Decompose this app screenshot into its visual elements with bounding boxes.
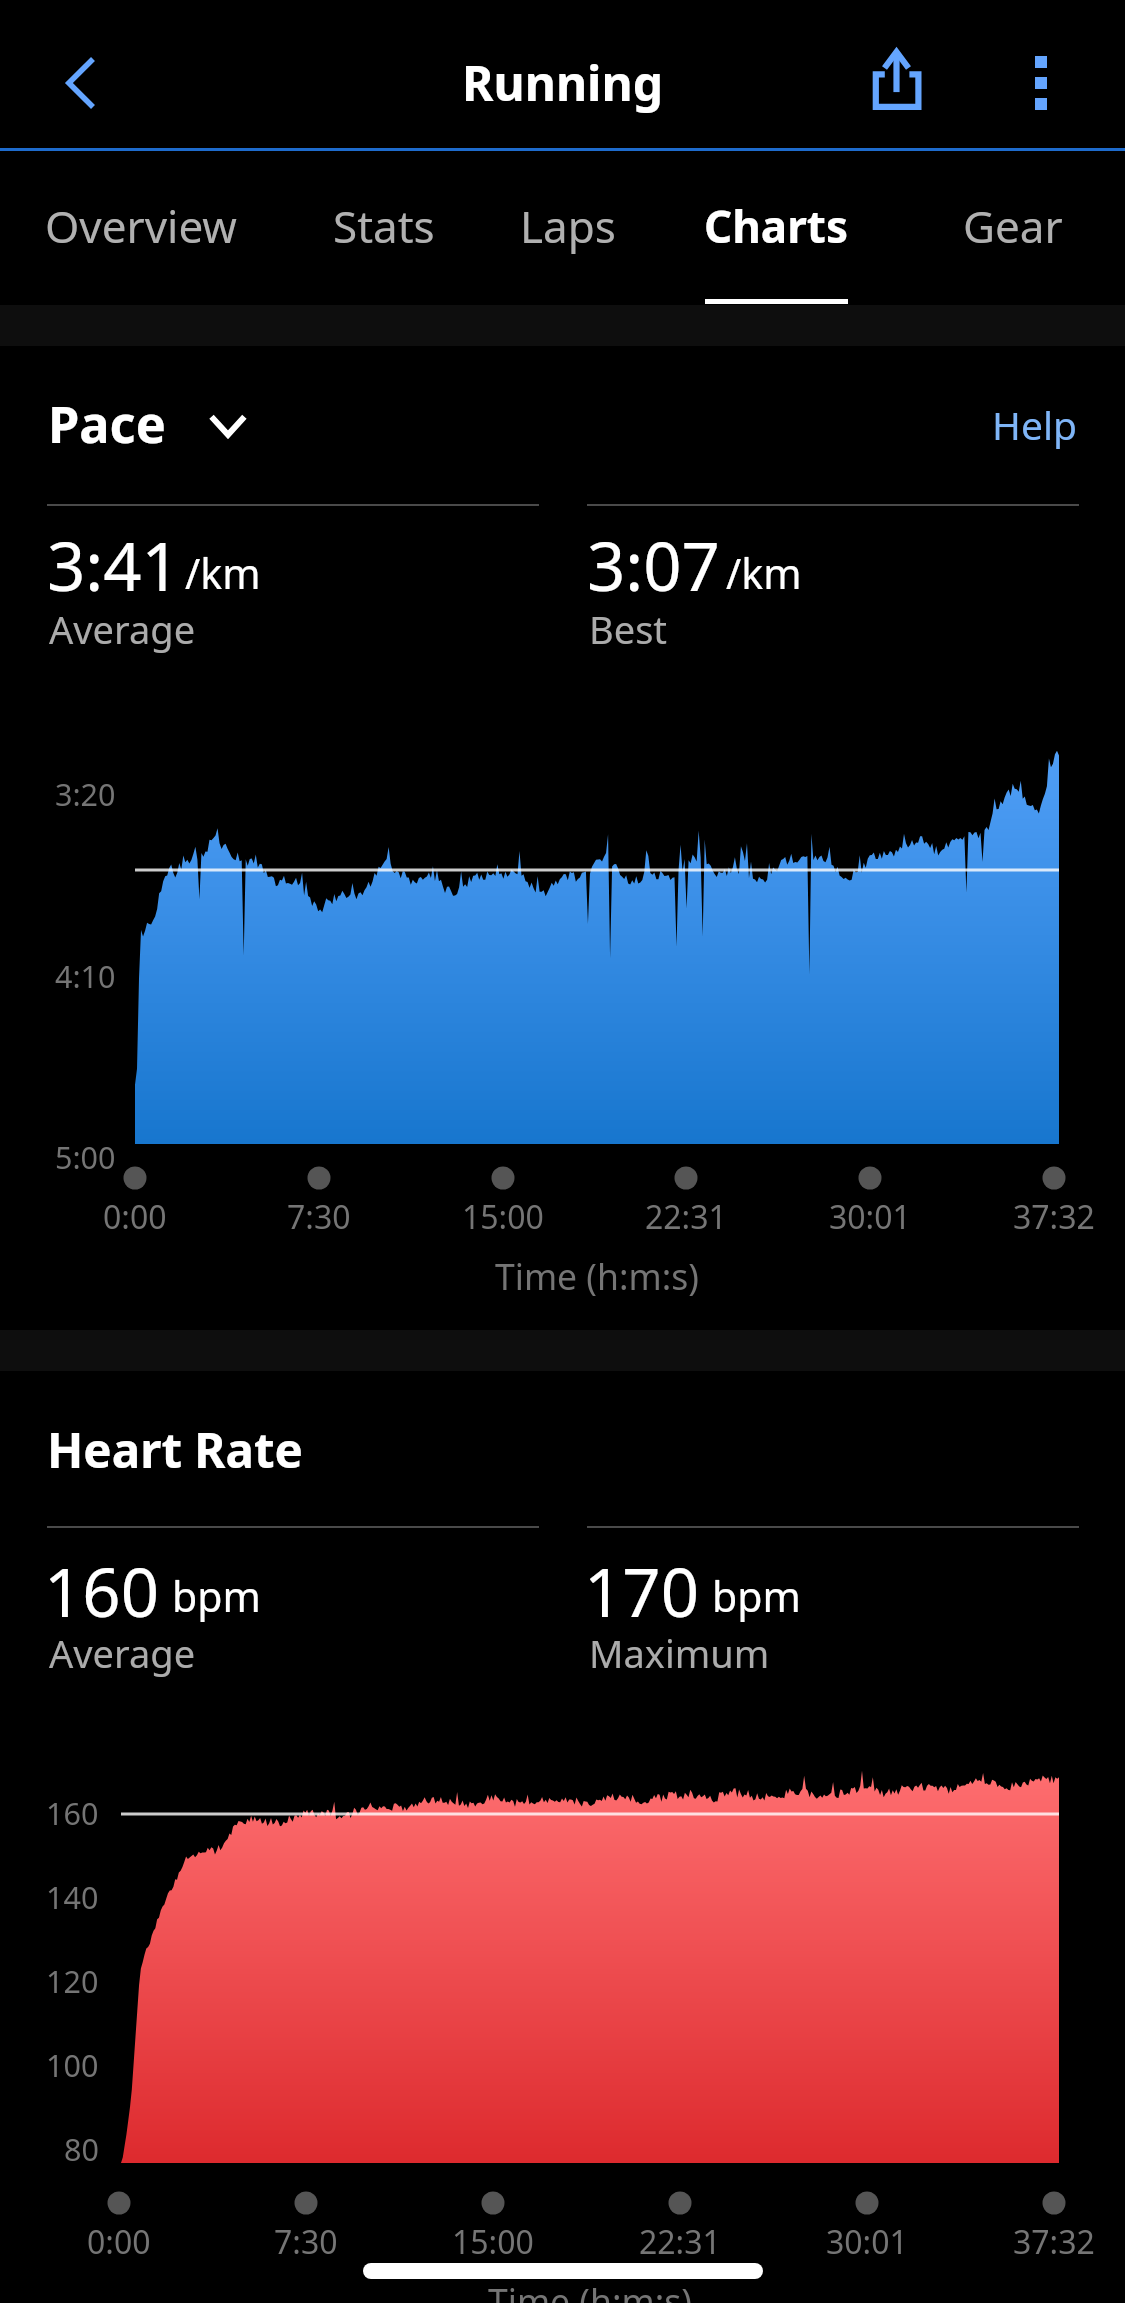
button[interactable]: Overview <box>18 160 264 305</box>
staticText: 30:01 <box>829 1195 911 1239</box>
staticText: Time (h:m:s) <box>488 2277 692 2303</box>
button[interactable]: Charts <box>677 160 875 305</box>
staticText: Time (h:m:s) <box>495 1252 699 1300</box>
staticText: Charts <box>704 196 849 256</box>
staticText: 3:20 <box>55 773 116 815</box>
staticText: bpm <box>172 1568 261 1624</box>
staticText: 0:00 <box>103 1195 167 1239</box>
button[interactable]: Gear <box>935 160 1091 305</box>
staticText: 0:00 <box>87 2220 151 2264</box>
staticText: Pace <box>48 389 166 458</box>
staticText: 15:00 <box>462 1195 544 1239</box>
button[interactable]: More options <box>1001 38 1081 118</box>
button[interactable]: Stats <box>304 160 464 305</box>
staticText: /km <box>185 545 261 601</box>
staticText: 22:31 <box>639 2220 721 2264</box>
staticText: 170 <box>584 1545 699 1636</box>
staticText: Average <box>49 1627 196 1679</box>
staticText: Running <box>462 50 663 115</box>
staticText: 22:31 <box>645 1195 727 1239</box>
staticText: 15:00 <box>452 2220 534 2264</box>
staticText: 37:32 <box>1013 2220 1095 2264</box>
staticText: 30:01 <box>826 2220 908 2264</box>
staticText: 37:32 <box>1013 1195 1095 1239</box>
staticText: /km <box>726 545 802 601</box>
button[interactable]: Laps <box>490 160 646 305</box>
staticText: 140 <box>46 1876 99 1918</box>
staticText: 120 <box>46 1960 99 2002</box>
staticText: 3:41 <box>47 519 180 610</box>
staticText: 7:30 <box>287 1195 351 1239</box>
staticText: 4:10 <box>55 955 116 997</box>
staticText: Best <box>589 603 668 655</box>
staticText: Overview <box>45 196 237 256</box>
staticText: 5:00 <box>55 1136 116 1178</box>
staticText: 7:30 <box>274 2220 338 2264</box>
staticText: Average <box>49 603 196 655</box>
staticText: 160 <box>44 1545 159 1636</box>
staticText: Stats <box>333 196 435 256</box>
staticText: Maximum <box>589 1627 770 1679</box>
staticText: 3:07 <box>587 519 720 610</box>
button[interactable]: Pace <box>40 386 255 466</box>
staticText: Help <box>992 398 1077 451</box>
staticText: 80 <box>64 2128 99 2170</box>
staticText: 160 <box>46 1792 99 1834</box>
button[interactable]: Share <box>852 36 942 126</box>
staticText: Gear <box>963 196 1063 256</box>
staticText: Laps <box>520 196 616 256</box>
staticText: Heart Rate <box>47 1417 303 1482</box>
staticText: 100 <box>46 2044 99 2086</box>
staticText: bpm <box>712 1568 801 1624</box>
button[interactable]: Back <box>24 40 110 126</box>
button[interactable]: Help <box>976 392 1098 464</box>
